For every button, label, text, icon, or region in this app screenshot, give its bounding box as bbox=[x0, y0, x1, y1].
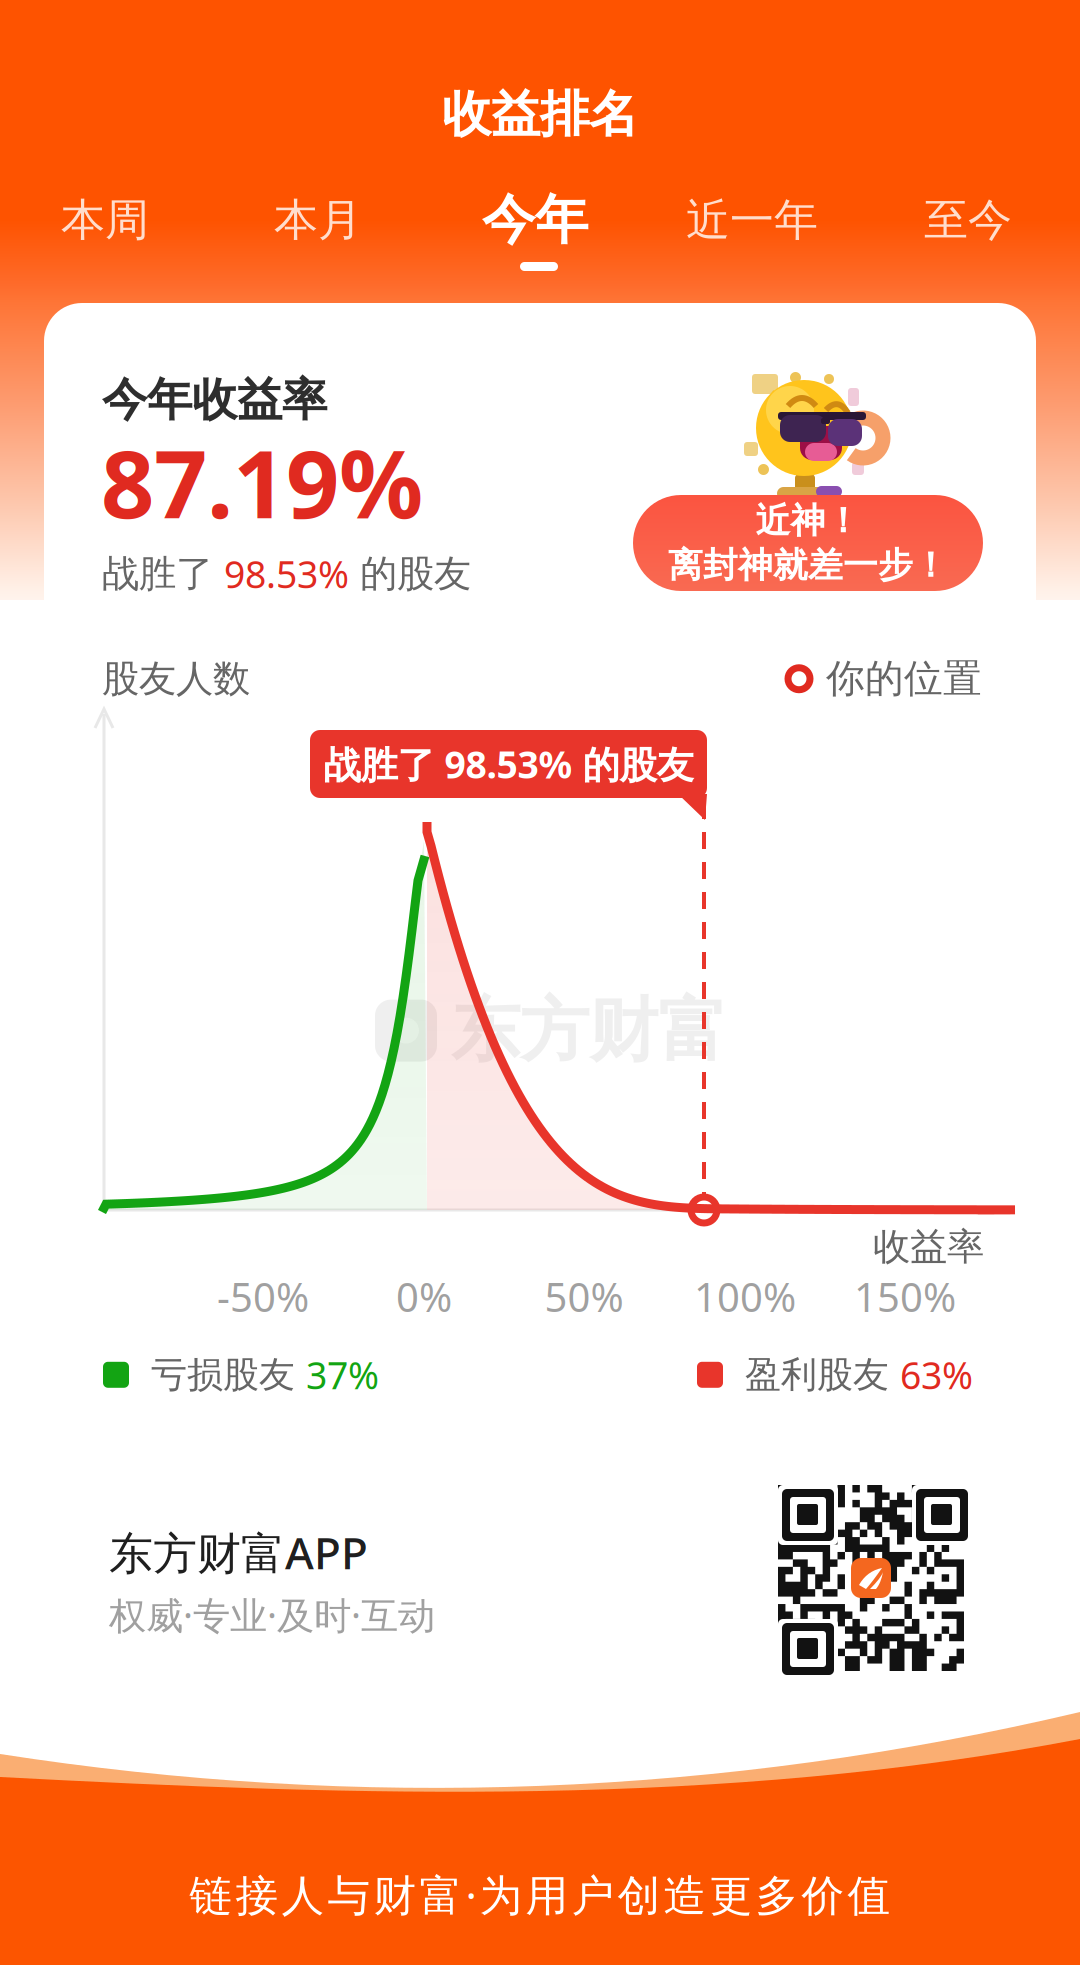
staticText: 权威·专业·及时·互动 bbox=[109, 1590, 435, 1640]
staticText: 今年 bbox=[482, 187, 588, 253]
staticText: 的股友 bbox=[349, 551, 471, 597]
staticText: 你的位置 bbox=[826, 655, 982, 702]
staticText: 50% bbox=[544, 1270, 623, 1323]
staticText: 本周 bbox=[61, 193, 149, 247]
staticText: 盈利股友 bbox=[723, 1353, 900, 1397]
staticText: 87.19% bbox=[101, 420, 423, 544]
staticText: 100% bbox=[694, 1270, 796, 1323]
staticText: -50% bbox=[217, 1270, 309, 1323]
button[interactable]: 近一年 bbox=[647, 191, 857, 287]
button[interactable]: 至今 bbox=[863, 191, 1073, 287]
staticText: 离封神就差一步！ bbox=[668, 544, 948, 587]
staticText: 战胜了 bbox=[102, 551, 224, 597]
staticText: 今年收益率 bbox=[102, 372, 327, 428]
staticText: 37% bbox=[306, 1350, 379, 1400]
button[interactable]: 今年 bbox=[430, 191, 640, 287]
staticText: 战胜了 98.53% 的股友 bbox=[323, 739, 693, 789]
button[interactable]: 本周 bbox=[0, 191, 210, 287]
staticText: 东方财富 bbox=[451, 988, 727, 1073]
staticText: 东方财富APP bbox=[109, 1523, 368, 1581]
button[interactable]: 本月 bbox=[213, 191, 423, 287]
staticText: 0% bbox=[396, 1270, 452, 1323]
staticText: 股友人数 bbox=[102, 656, 250, 702]
staticText: 本月 bbox=[274, 193, 362, 247]
staticText: 链接人与财富·为用户创造更多价值 bbox=[189, 1866, 890, 1923]
staticText: 近一年 bbox=[686, 193, 818, 247]
staticText: 63% bbox=[900, 1350, 973, 1400]
staticText: 近神！ bbox=[755, 499, 860, 542]
staticText: 收益排名 bbox=[442, 84, 638, 145]
staticText: 至今 bbox=[924, 193, 1012, 247]
staticText: 收益率 bbox=[873, 1224, 984, 1270]
staticText: 150% bbox=[854, 1270, 956, 1323]
staticText: 98.53% bbox=[224, 549, 349, 599]
staticText: 亏损股友 bbox=[129, 1353, 306, 1397]
